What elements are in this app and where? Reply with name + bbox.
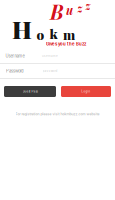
staticText: Login [81, 90, 90, 93]
button[interactable]: Login [61, 86, 111, 97]
staticText: u [66, 2, 73, 18]
staticText: Guest Pass [22, 90, 37, 93]
staticText: password [42, 69, 57, 73]
staticText: k [49, 25, 57, 42]
staticText: o [36, 26, 44, 43]
staticText: Username [5, 53, 24, 58]
staticText: Password [6, 68, 24, 73]
staticText: B [50, 0, 64, 25]
staticText: z [77, 1, 82, 15]
staticText: H [12, 13, 32, 45]
staticText: username [42, 54, 58, 58]
staticText: Gives you the Buzz [46, 41, 86, 47]
staticText: m [63, 26, 75, 43]
staticText: z [85, 0, 90, 13]
button[interactable]: Guest Pass [4, 86, 56, 97]
staticText: For registration please visit hokmbuzz.c… [15, 112, 99, 116]
